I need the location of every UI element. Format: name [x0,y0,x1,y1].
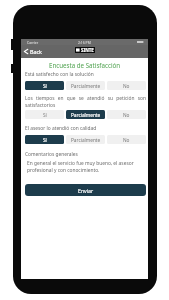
staticText: Sí [43,137,47,143]
staticText: No [123,137,130,143]
staticText: Back [30,48,42,55]
staticText: Sí [43,83,47,89]
button[interactable]: No [107,135,146,144]
staticText: Encuesta de Satisfacción [21,61,148,69]
staticText: Parcialmente [71,137,101,143]
button[interactable]: Sí [25,110,64,119]
staticText: Comentarios generales [25,151,78,158]
staticText: Los tiempos en que se atendió su petició… [25,95,146,109]
button[interactable]: Parcialmente [66,81,105,90]
button[interactable]: Enviar [25,184,146,196]
staticText: Parcialmente [71,83,101,89]
staticText: 2:16 PM [78,40,91,45]
staticText: Enviar [78,187,94,194]
staticText: Está satisfecho con la solución [25,71,146,78]
button[interactable]: Sí [25,81,64,90]
staticText: El asesor lo atendió con calidad [25,125,146,132]
button[interactable]: No [107,81,146,90]
staticText: SINTEL [81,47,94,53]
staticText: Carrier [27,40,39,45]
button[interactable]: Back [24,48,42,55]
staticText: Parcialmente [71,112,101,118]
staticText: En general el servicio fue muy bueno, el… [27,160,140,174]
button[interactable]: Sí [25,135,64,144]
button[interactable]: No [107,110,146,119]
button[interactable]: Parcialmente [66,110,105,119]
staticText: Sí [43,112,47,118]
button[interactable]: Logo [76,47,94,53]
staticText: No [123,112,130,118]
button[interactable]: Parcialmente [66,135,105,144]
staticText: No [123,83,130,89]
